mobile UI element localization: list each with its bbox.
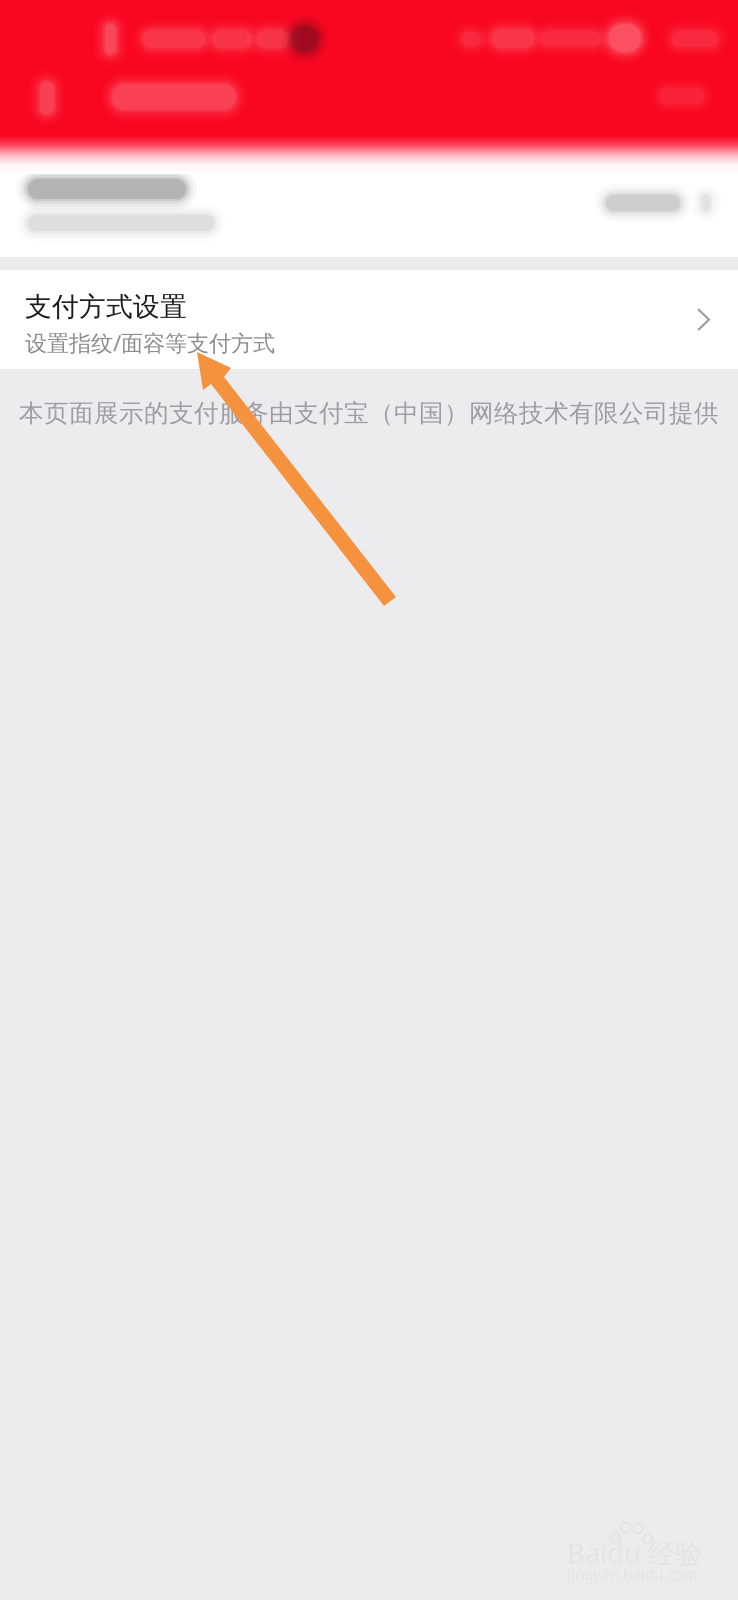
button[interactable]: Back — [16, 70, 78, 126]
button[interactable]: 支付方式设置 — [0, 270, 738, 369]
staticText: Baidu 经验 — [567, 1534, 702, 1571]
button[interactable] — [0, 147, 738, 257]
staticText: 设置指纹/面容等支付方式 — [25, 328, 275, 358]
staticText: 支付方式设置 — [25, 290, 187, 324]
staticText: 本页面展示的支付服务由支付宝（中国）网络技术有限公司提供 — [19, 398, 719, 429]
